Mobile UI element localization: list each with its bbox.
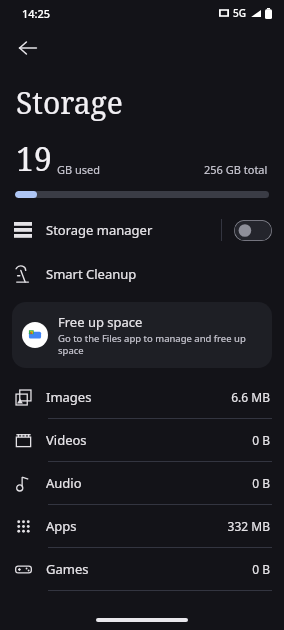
button[interactable]: Storage manager xyxy=(0,208,284,252)
staticText: 0 B xyxy=(252,432,270,448)
button[interactable]: Back xyxy=(6,26,50,70)
staticText: Apps xyxy=(46,517,227,535)
staticText: 0 B xyxy=(252,475,270,491)
staticText: Smart Cleanup xyxy=(46,265,137,283)
staticText: 5G xyxy=(233,6,246,20)
staticText: Free up space xyxy=(58,313,143,331)
staticText: Videos xyxy=(46,431,252,449)
staticText: 256 GB total xyxy=(204,162,268,177)
button[interactable]: Videos xyxy=(0,419,284,462)
staticText: 6.6 MB xyxy=(231,389,270,405)
staticText: 332 MB xyxy=(227,518,270,534)
staticText: Go to the Files app to manage and free u… xyxy=(58,332,262,357)
button[interactable]: Apps xyxy=(0,505,284,548)
button[interactable]: Games xyxy=(0,548,284,591)
staticText: 19 xyxy=(16,137,52,181)
staticText: 0 B xyxy=(252,561,270,577)
staticText: 14:25 xyxy=(22,6,51,21)
button[interactable]: Smart Cleanup xyxy=(0,252,284,296)
button[interactable]: Storage manager toggle xyxy=(234,220,272,241)
button[interactable]: Free up space xyxy=(12,302,272,368)
staticText: Games xyxy=(46,560,252,578)
button[interactable]: Images xyxy=(0,376,284,419)
staticText: Images xyxy=(46,388,231,406)
staticText: Storage manager xyxy=(46,221,221,239)
staticText: Audio xyxy=(46,474,252,492)
staticText: GB used xyxy=(57,162,101,177)
staticText: Storage xyxy=(16,82,123,123)
button[interactable]: Audio xyxy=(0,462,284,505)
